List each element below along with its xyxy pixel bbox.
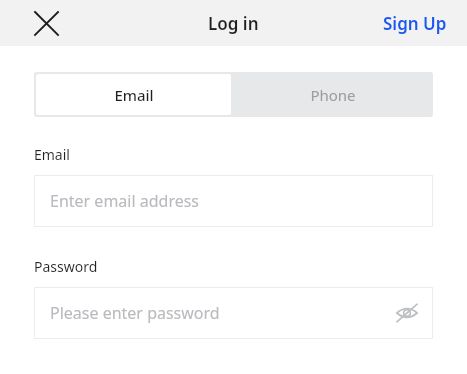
button[interactable]: Enter email address	[34, 175, 433, 227]
button[interactable]: Sign Up	[363, 4, 467, 43]
staticText: Password	[34, 257, 98, 276]
staticText: Email	[34, 145, 70, 164]
staticText: Enter email address	[50, 190, 200, 212]
button[interactable]: Phone	[233, 72, 433, 117]
button[interactable]: Show password	[387, 293, 427, 333]
staticText: Sign Up	[383, 12, 447, 35]
button[interactable]: Email	[36, 74, 231, 115]
staticText: Phone	[310, 85, 356, 105]
button[interactable]: Please enter password	[34, 287, 433, 339]
button[interactable]: Close	[24, 1, 68, 45]
staticText: Email	[114, 85, 154, 105]
staticText: Please enter password	[50, 302, 220, 324]
staticText: Log in	[208, 12, 259, 35]
